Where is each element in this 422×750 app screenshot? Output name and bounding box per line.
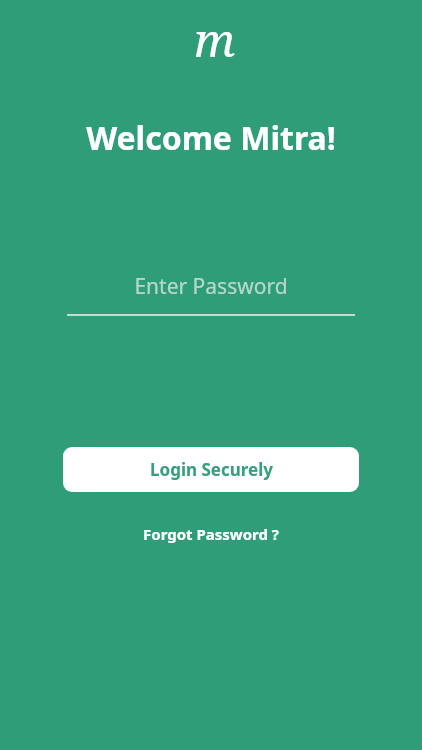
staticText: Forgot Password ? <box>143 524 279 544</box>
button[interactable]: Enter Password <box>67 270 355 316</box>
button[interactable]: Login Securely <box>63 447 359 492</box>
staticText: Login Securely <box>150 458 273 481</box>
staticText: m <box>194 8 236 58</box>
staticText: Enter Password <box>134 272 288 301</box>
button[interactable]: Forgot Password ? <box>133 520 289 548</box>
staticText: Welcome Mitra! <box>0 116 422 160</box>
